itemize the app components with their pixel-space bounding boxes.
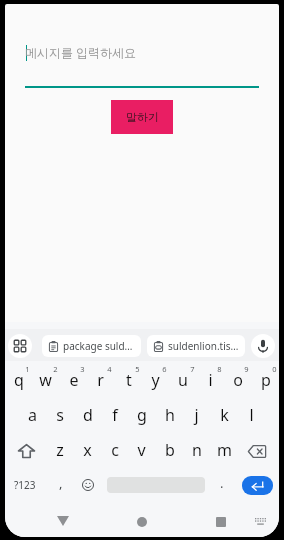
button[interactable]: r: [87, 363, 114, 395]
staticText: h: [165, 404, 175, 426]
staticText: i: [208, 369, 213, 391]
button[interactable]: u: [169, 363, 196, 395]
staticText: w: [39, 369, 52, 391]
staticText: package suld…: [63, 339, 133, 353]
button[interactable]: g: [128, 398, 155, 430]
staticText: f: [112, 404, 118, 426]
button[interactable]: Home: [125, 508, 159, 536]
staticText: 2: [53, 364, 58, 374]
staticText: t: [126, 369, 132, 391]
staticText: 3: [80, 364, 85, 374]
staticText: l: [249, 404, 254, 426]
button[interactable]: suldenlion.tis…: [147, 335, 245, 357]
button[interactable]: Backspace: [240, 433, 274, 465]
staticText: v: [137, 439, 146, 461]
staticText: m: [217, 439, 232, 461]
button[interactable]: package suld…: [42, 335, 141, 357]
button[interactable]: .: [209, 469, 235, 501]
button[interactable]: Voice input: [251, 334, 275, 358]
staticText: e: [69, 369, 79, 391]
button[interactable]: x: [74, 433, 101, 465]
button[interactable]: 메시지를 입력하세요: [25, 36, 259, 88]
button[interactable]: Keyboard toolbar: [8, 334, 32, 358]
staticText: 0: [272, 364, 277, 374]
button[interactable]: l: [238, 398, 265, 430]
staticText: 7: [190, 364, 195, 374]
button[interactable]: h: [156, 398, 183, 430]
staticText: 4: [107, 364, 112, 374]
staticText: d: [83, 404, 93, 426]
button[interactable]: d: [74, 398, 101, 430]
staticText: y: [151, 369, 160, 391]
button[interactable]: z: [46, 433, 73, 465]
staticText: 6: [162, 364, 167, 374]
staticText: g: [137, 404, 147, 426]
staticText: p: [261, 369, 271, 391]
button[interactable]: k: [211, 398, 238, 430]
button[interactable]: a: [19, 398, 46, 430]
staticText: ,: [59, 474, 63, 492]
button[interactable]: j: [183, 398, 210, 430]
button[interactable]: m: [211, 433, 238, 465]
staticText: q: [14, 369, 24, 391]
button[interactable]: f: [101, 398, 128, 430]
button[interactable]: n: [183, 433, 210, 465]
staticText: 9: [244, 364, 249, 374]
button[interactable]: e: [60, 363, 87, 395]
button[interactable]: t: [115, 363, 142, 395]
button[interactable]: c: [101, 433, 128, 465]
button[interactable]: q: [5, 363, 32, 395]
staticText: 8: [217, 364, 222, 374]
staticText: suldenlion.tis…: [168, 339, 239, 353]
button[interactable]: b: [156, 433, 183, 465]
staticText: a: [28, 404, 37, 426]
staticText: 말하기: [126, 110, 159, 124]
staticText: 5: [135, 364, 140, 374]
staticText: c: [111, 439, 119, 461]
button[interactable]: o: [224, 363, 251, 395]
button[interactable]: Enter: [242, 476, 273, 495]
staticText: r: [97, 369, 104, 391]
button[interactable]: 말하기: [111, 100, 173, 134]
button[interactable]: Back: [46, 507, 80, 535]
button[interactable]: p: [252, 363, 279, 395]
staticText: k: [220, 404, 229, 426]
button[interactable]: Recents: [204, 508, 238, 536]
staticText: j: [194, 404, 199, 426]
staticText: s: [56, 404, 64, 426]
staticText: 1: [25, 364, 30, 374]
staticText: x: [83, 439, 92, 461]
button[interactable]: Shift: [9, 433, 43, 465]
button[interactable]: ,: [48, 469, 74, 501]
staticText: ?123: [14, 478, 36, 492]
button[interactable]: v: [128, 433, 155, 465]
staticText: .: [220, 474, 224, 492]
staticText: 메시지를 입력하세요: [25, 44, 137, 60]
staticText: n: [192, 439, 202, 461]
staticText: z: [56, 439, 64, 461]
button[interactable]: Emoji: [75, 469, 101, 501]
staticText: u: [178, 369, 188, 391]
button[interactable]: y: [142, 363, 169, 395]
button[interactable]: w: [32, 363, 59, 395]
button[interactable]: ?123: [8, 469, 42, 501]
staticText: o: [233, 369, 243, 391]
button[interactable]: s: [46, 398, 73, 430]
button[interactable]: i: [197, 363, 224, 395]
button[interactable]: Switch keyboard: [243, 508, 277, 536]
staticText: b: [165, 439, 175, 461]
